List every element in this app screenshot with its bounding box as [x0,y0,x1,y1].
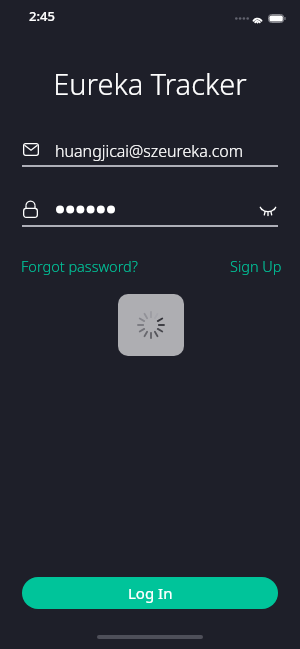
button[interactable]: Log In [22,577,278,609]
button[interactable]: Show password [254,198,282,224]
staticText: Eureka Tracker [53,64,247,103]
staticText: 2:45 [29,7,55,25]
staticText: Forgot password? [21,256,138,276]
staticText: Log In [128,583,173,603]
button[interactable]: Sign Up [226,252,286,280]
button[interactable]: Forgot password? [17,252,142,280]
staticText: Sign Up [230,256,282,276]
staticText: huangjicai@szeureka.com [55,140,244,162]
